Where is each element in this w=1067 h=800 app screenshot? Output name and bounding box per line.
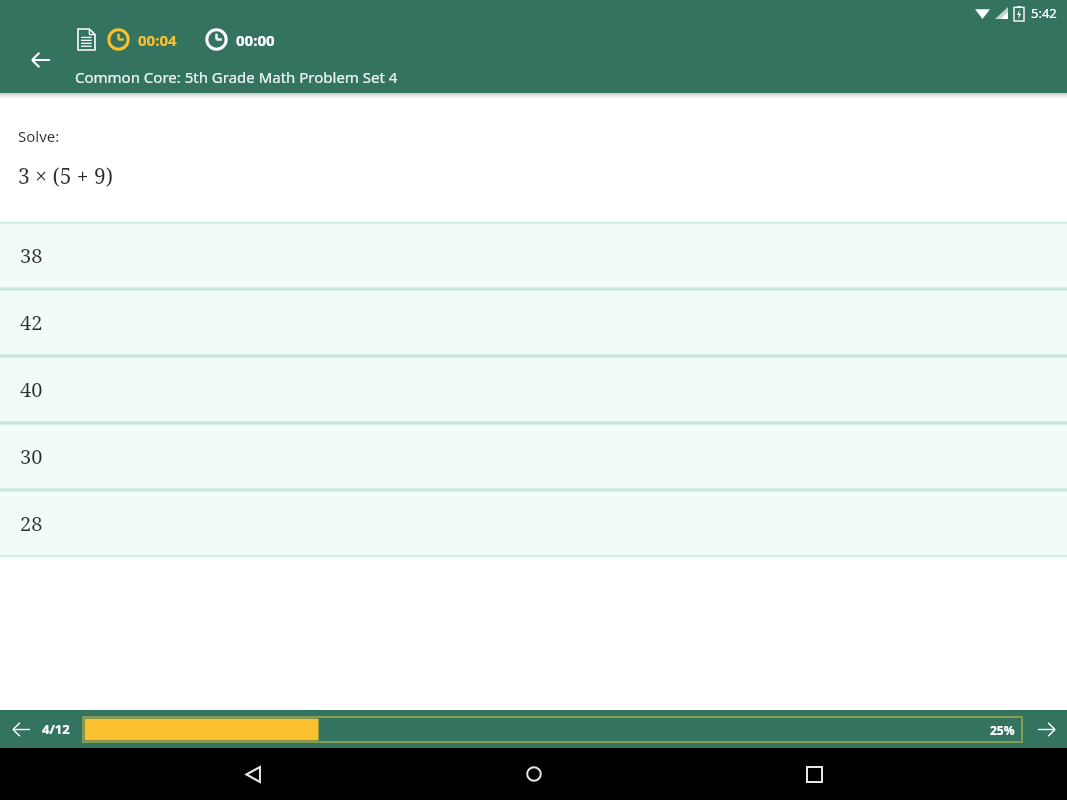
staticText: 4/12 [42,720,70,738]
staticText: Common Core: 5th Grade Math Problem Set … [75,67,398,87]
staticText: Solve: [18,126,60,146]
button[interactable]: Next question [1025,710,1067,748]
button[interactable]: Back [18,37,64,83]
button[interactable]: Back [225,748,281,800]
button[interactable]: Home [506,748,562,800]
button[interactable]: Recent apps [786,748,842,800]
staticText: 3 × (5 + 9) [18,162,114,191]
staticText: 00:04 [138,30,177,50]
button[interactable]: 40 [0,356,1067,423]
button[interactable]: 25% [83,717,1022,742]
button[interactable]: Previous question [0,710,42,748]
button[interactable]: 30 [0,423,1067,490]
button[interactable]: 42 [0,289,1067,356]
staticText: 30 [20,443,43,470]
staticText: 42 [20,309,43,336]
staticText: 00:00 [236,30,275,50]
staticText: 38 [20,242,43,269]
staticText: 40 [20,376,43,403]
staticText: 28 [20,510,43,537]
staticText: 5:42 [1031,4,1057,22]
staticText: 25% [990,722,1015,738]
button[interactable]: 38 [0,222,1067,289]
button[interactable]: 28 [0,490,1067,557]
